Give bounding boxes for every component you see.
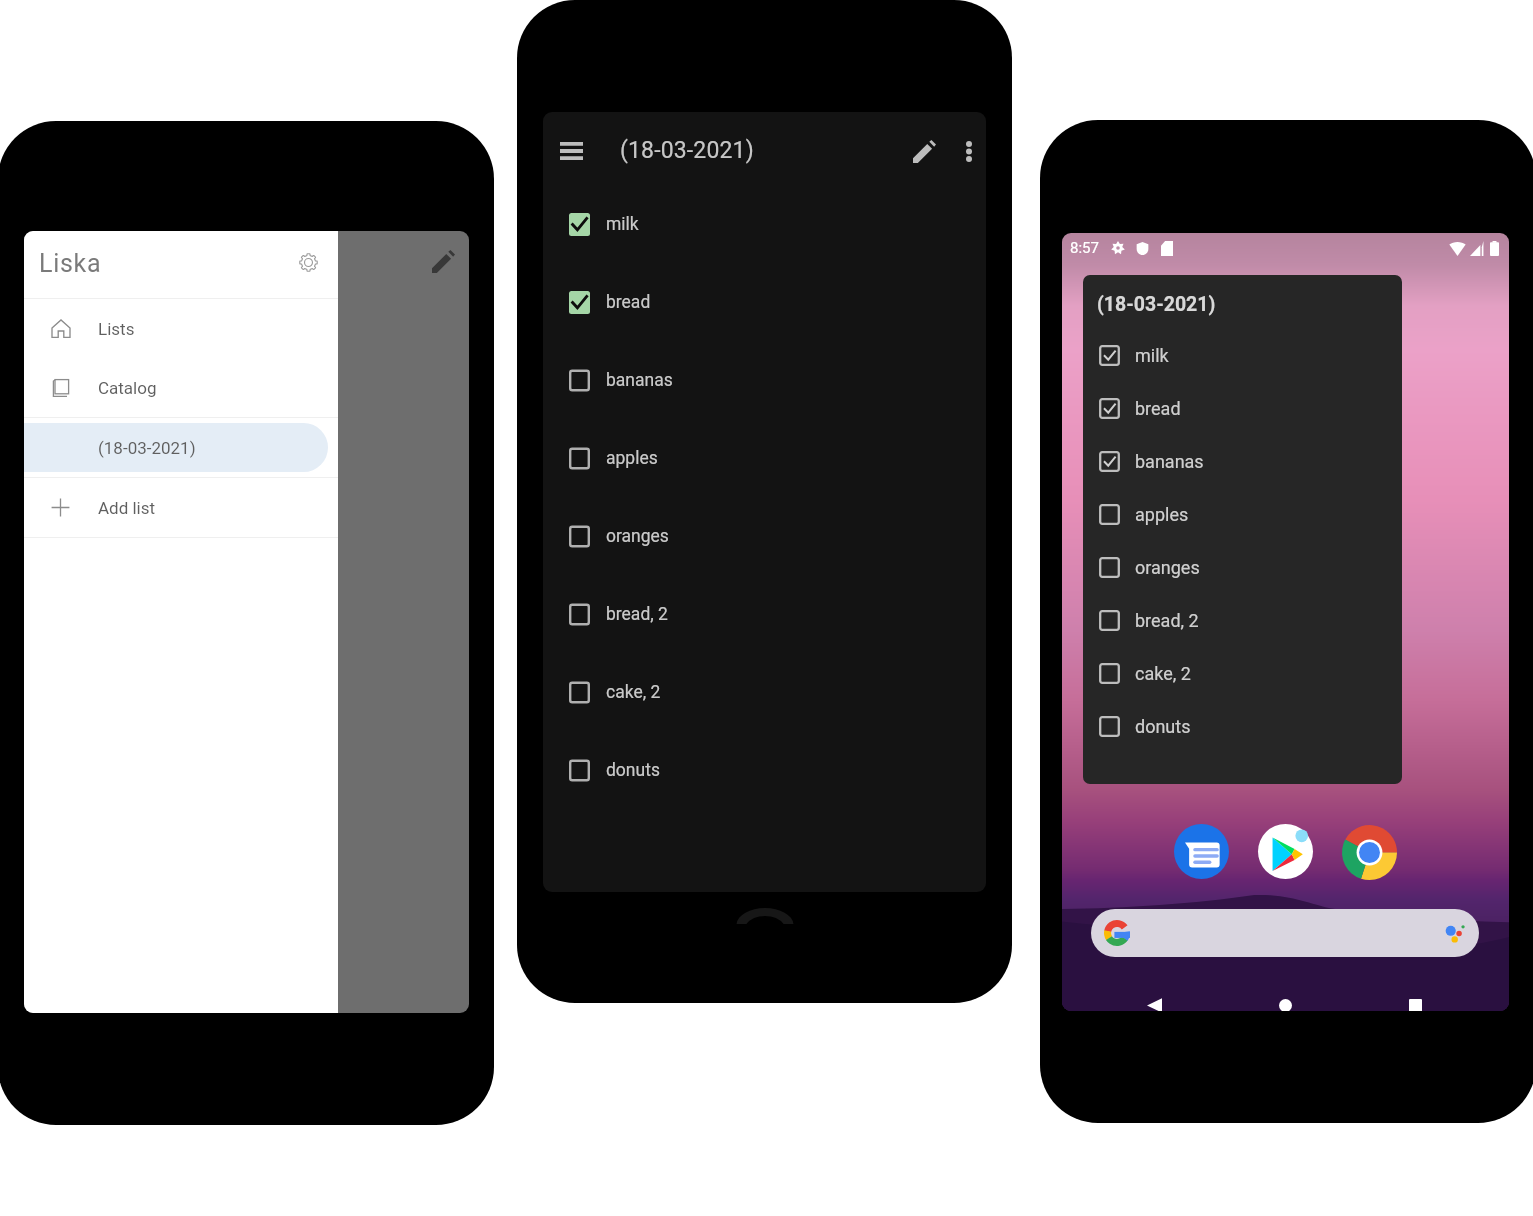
button[interactable]: apples xyxy=(1083,488,1402,541)
staticText: bananas xyxy=(1135,451,1204,472)
staticText: cake, 2 xyxy=(606,682,661,703)
staticText: (18-03-2021) xyxy=(98,438,196,458)
button[interactable]: bread xyxy=(1083,382,1402,435)
button[interactable]: donuts xyxy=(1083,700,1402,753)
button[interactable]: Add list xyxy=(24,478,338,537)
button[interactable]: Lists xyxy=(24,299,338,358)
button[interactable]: oranges xyxy=(1083,541,1402,594)
button[interactable]: Menu xyxy=(548,128,594,174)
button[interactable]: cake, 2 xyxy=(1083,647,1402,700)
button[interactable]: milk xyxy=(1083,329,1402,382)
staticText: bread xyxy=(606,292,651,313)
staticText: Lists xyxy=(98,319,135,339)
button[interactable]: Search xyxy=(1091,909,1479,957)
button[interactable]: Settings xyxy=(288,242,328,282)
button[interactable]: App xyxy=(1174,824,1229,879)
staticText: (18-03-2021) xyxy=(620,137,754,164)
button[interactable]: apples xyxy=(543,419,986,497)
button[interactable]: (18-03-2021) xyxy=(1083,275,1402,784)
button[interactable]: bread, 2 xyxy=(1083,594,1402,647)
staticText: Liska xyxy=(39,249,102,278)
button[interactable]: (18-03-2021) xyxy=(24,418,338,477)
button[interactable]: Home xyxy=(1266,986,1304,1011)
button[interactable]: bananas xyxy=(1083,435,1402,488)
button[interactable]: cake, 2 xyxy=(543,653,986,731)
button[interactable]: bread xyxy=(543,263,986,341)
button[interactable]: oranges xyxy=(543,497,986,575)
staticText: bread xyxy=(1135,398,1181,419)
button[interactable]: Recents xyxy=(1396,986,1434,1011)
staticText: (18-03-2021) xyxy=(1097,293,1216,316)
button[interactable]: milk xyxy=(543,185,986,263)
button[interactable]: App xyxy=(1342,825,1397,880)
staticText: donuts xyxy=(1135,716,1191,737)
staticText: bread, 2 xyxy=(606,604,668,625)
staticText: bananas xyxy=(606,370,673,391)
staticText: donuts xyxy=(606,760,660,781)
button[interactable]: bread, 2 xyxy=(543,575,986,653)
staticText: apples xyxy=(1135,504,1189,525)
staticText: Add list xyxy=(98,498,156,518)
staticText: oranges xyxy=(1135,557,1200,578)
staticText: Catalog xyxy=(98,378,157,398)
staticText: 8:57 xyxy=(1070,239,1099,257)
button[interactable]: App xyxy=(1258,824,1313,879)
button[interactable]: More options xyxy=(949,131,986,171)
staticText: apples xyxy=(606,448,658,469)
button[interactable]: Edit xyxy=(420,238,466,284)
staticText: cake, 2 xyxy=(1135,663,1191,684)
staticText: milk xyxy=(1135,345,1169,366)
button[interactable]: Back xyxy=(1135,986,1173,1011)
button[interactable]: Edit xyxy=(902,129,946,173)
staticText: milk xyxy=(606,214,639,235)
button[interactable]: Catalog xyxy=(24,358,338,417)
button[interactable]: donuts xyxy=(543,731,986,809)
staticText: oranges xyxy=(606,526,669,547)
button[interactable]: bananas xyxy=(543,341,986,419)
staticText: bread, 2 xyxy=(1135,610,1199,631)
